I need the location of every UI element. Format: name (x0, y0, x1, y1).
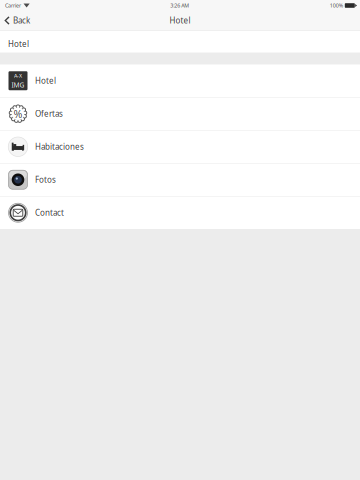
staticText: Carrier (5, 2, 21, 9)
button[interactable]: Fotos (0, 163, 360, 196)
button[interactable]: A-X (0, 64, 360, 97)
button[interactable]: Back (0, 11, 35, 30)
staticText: Habitaciones (35, 141, 84, 152)
staticText: IMG (11, 80, 24, 89)
staticText: % (13, 107, 22, 121)
staticText: 100% (330, 2, 343, 9)
button[interactable]: % (0, 97, 360, 130)
staticText: 3:26 AM (170, 2, 189, 9)
staticText: Hotel (169, 15, 190, 26)
staticText: Fotos (35, 174, 56, 185)
button[interactable]: Contact (0, 196, 360, 229)
staticText: Hotel (8, 38, 29, 49)
staticText: Back (13, 15, 30, 26)
staticText: Contact (35, 207, 64, 218)
staticText: Ofertas (35, 108, 63, 119)
staticText: A-X (14, 72, 22, 79)
button[interactable]: Habitaciones (0, 130, 360, 163)
staticText: Hotel (35, 75, 56, 86)
